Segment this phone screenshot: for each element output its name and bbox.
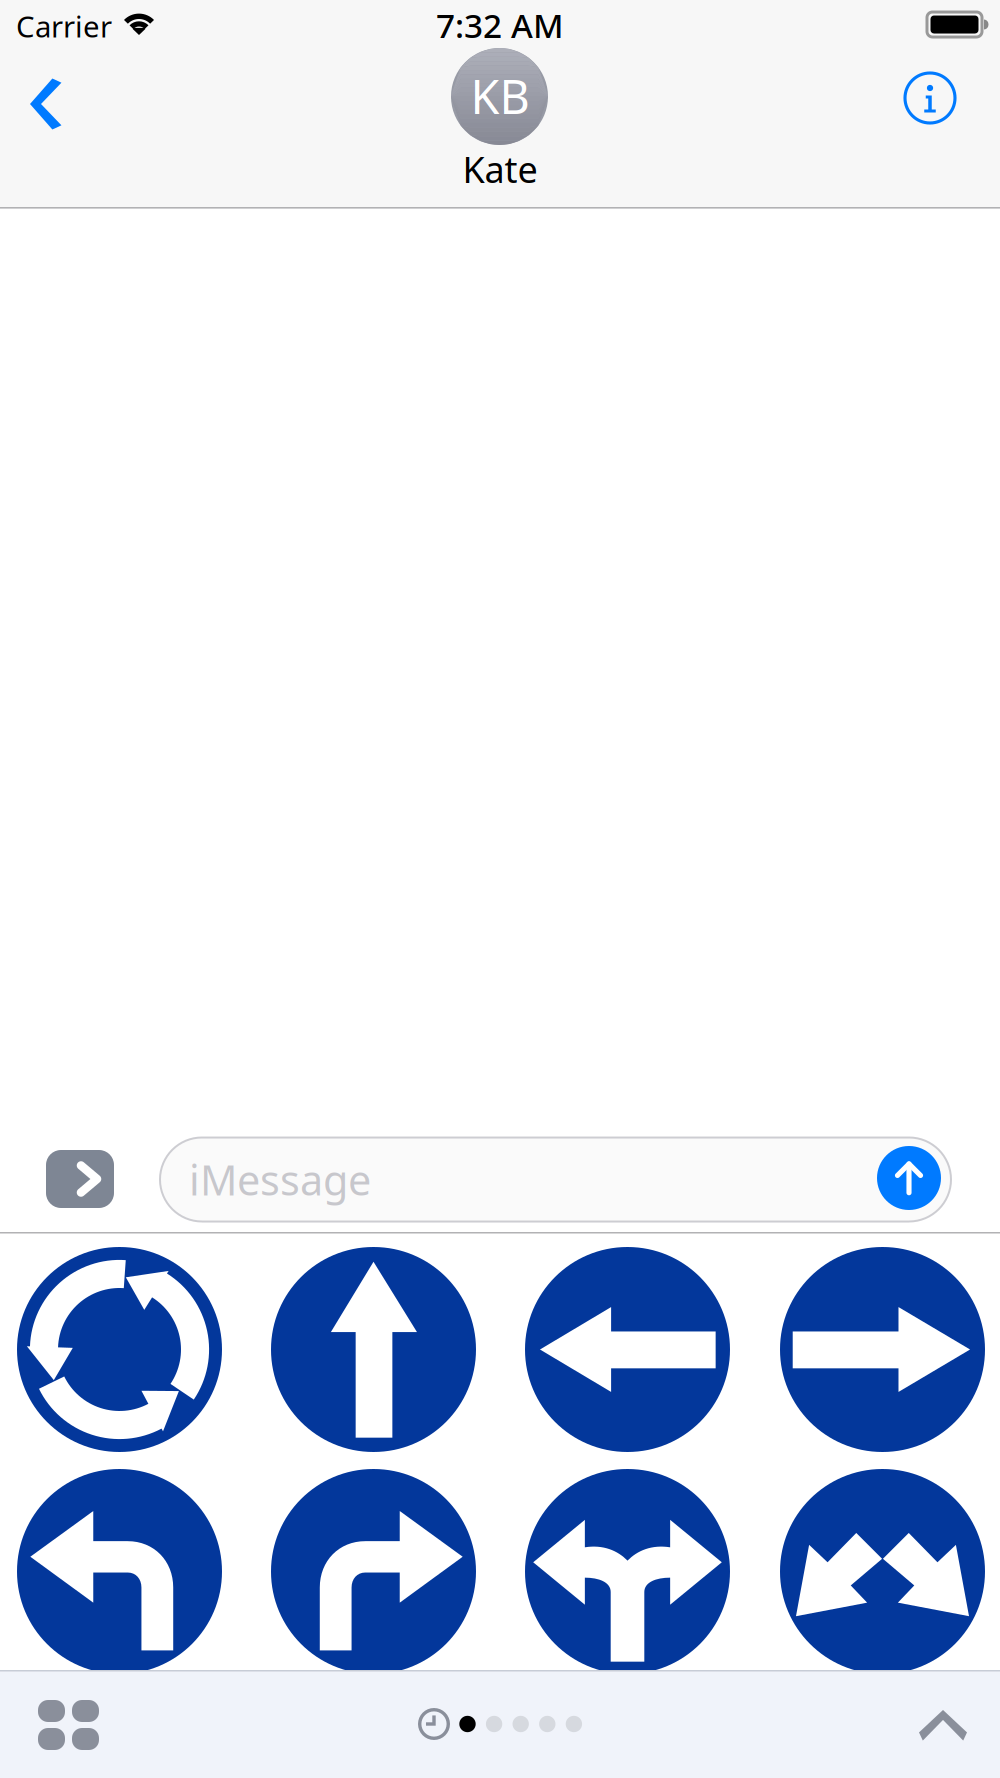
button[interactable]: iMessage [160, 1137, 951, 1221]
button[interactable]: Recents [406, 1696, 462, 1752]
button[interactable]: Left turn ahead sticker [0, 1232, 1000, 1670]
button[interactable]: Details [882, 50, 978, 146]
button[interactable]: Pass either side sticker [0, 1232, 1000, 1670]
button[interactable]: Right turn ahead sticker [0, 1232, 1000, 1670]
button[interactable]: App grid [20, 1670, 118, 1764]
button[interactable]: Open app drawer [46, 1150, 114, 1208]
staticText: iMessage [189, 1152, 371, 1207]
button[interactable]: Turn left sticker [0, 1232, 1000, 1670]
button[interactable]: KB [400, 54, 600, 194]
button[interactable]: Send [876, 1145, 942, 1211]
staticText: 7:32 AM [436, 3, 564, 47]
button[interactable]: Back [0, 54, 110, 168]
button[interactable]: Straight ahead sticker [0, 1232, 1000, 1670]
staticText: KB [470, 65, 529, 127]
button[interactable]: Roundabout sticker [0, 1232, 1000, 1670]
staticText: Carrier [16, 6, 112, 45]
staticText: Kate [462, 145, 537, 193]
button[interactable]: Expand [894, 1692, 990, 1776]
button[interactable]: Left or right sticker [0, 1232, 1000, 1670]
button[interactable]: Turn right sticker [0, 1232, 1000, 1670]
